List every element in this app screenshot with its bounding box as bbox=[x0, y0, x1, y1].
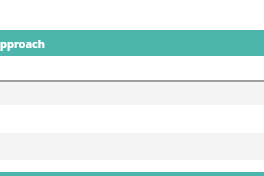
button[interactable]: pproach bbox=[0, 30, 264, 56]
staticText: pproach bbox=[0, 36, 45, 51]
